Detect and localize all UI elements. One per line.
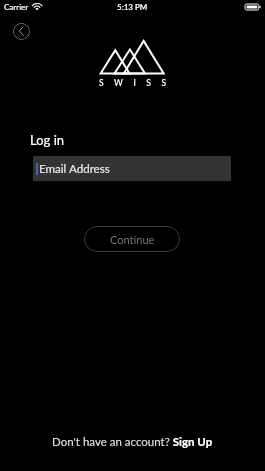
staticText: SWISS [99, 78, 177, 88]
staticText: Continue [110, 233, 155, 246]
button[interactable]: Back [13, 23, 30, 40]
button[interactable]: Continue [84, 226, 180, 252]
staticText: Log in [30, 132, 65, 148]
staticText: Email Address [39, 162, 110, 176]
staticText: 5:13 PM [117, 2, 148, 12]
staticText: Don't have an account? Sign Up [52, 435, 213, 449]
button[interactable]: Email Address [33, 156, 231, 181]
button[interactable]: Don't have an account? Sign Up [0, 435, 265, 449]
staticText: Carrier [4, 2, 29, 12]
